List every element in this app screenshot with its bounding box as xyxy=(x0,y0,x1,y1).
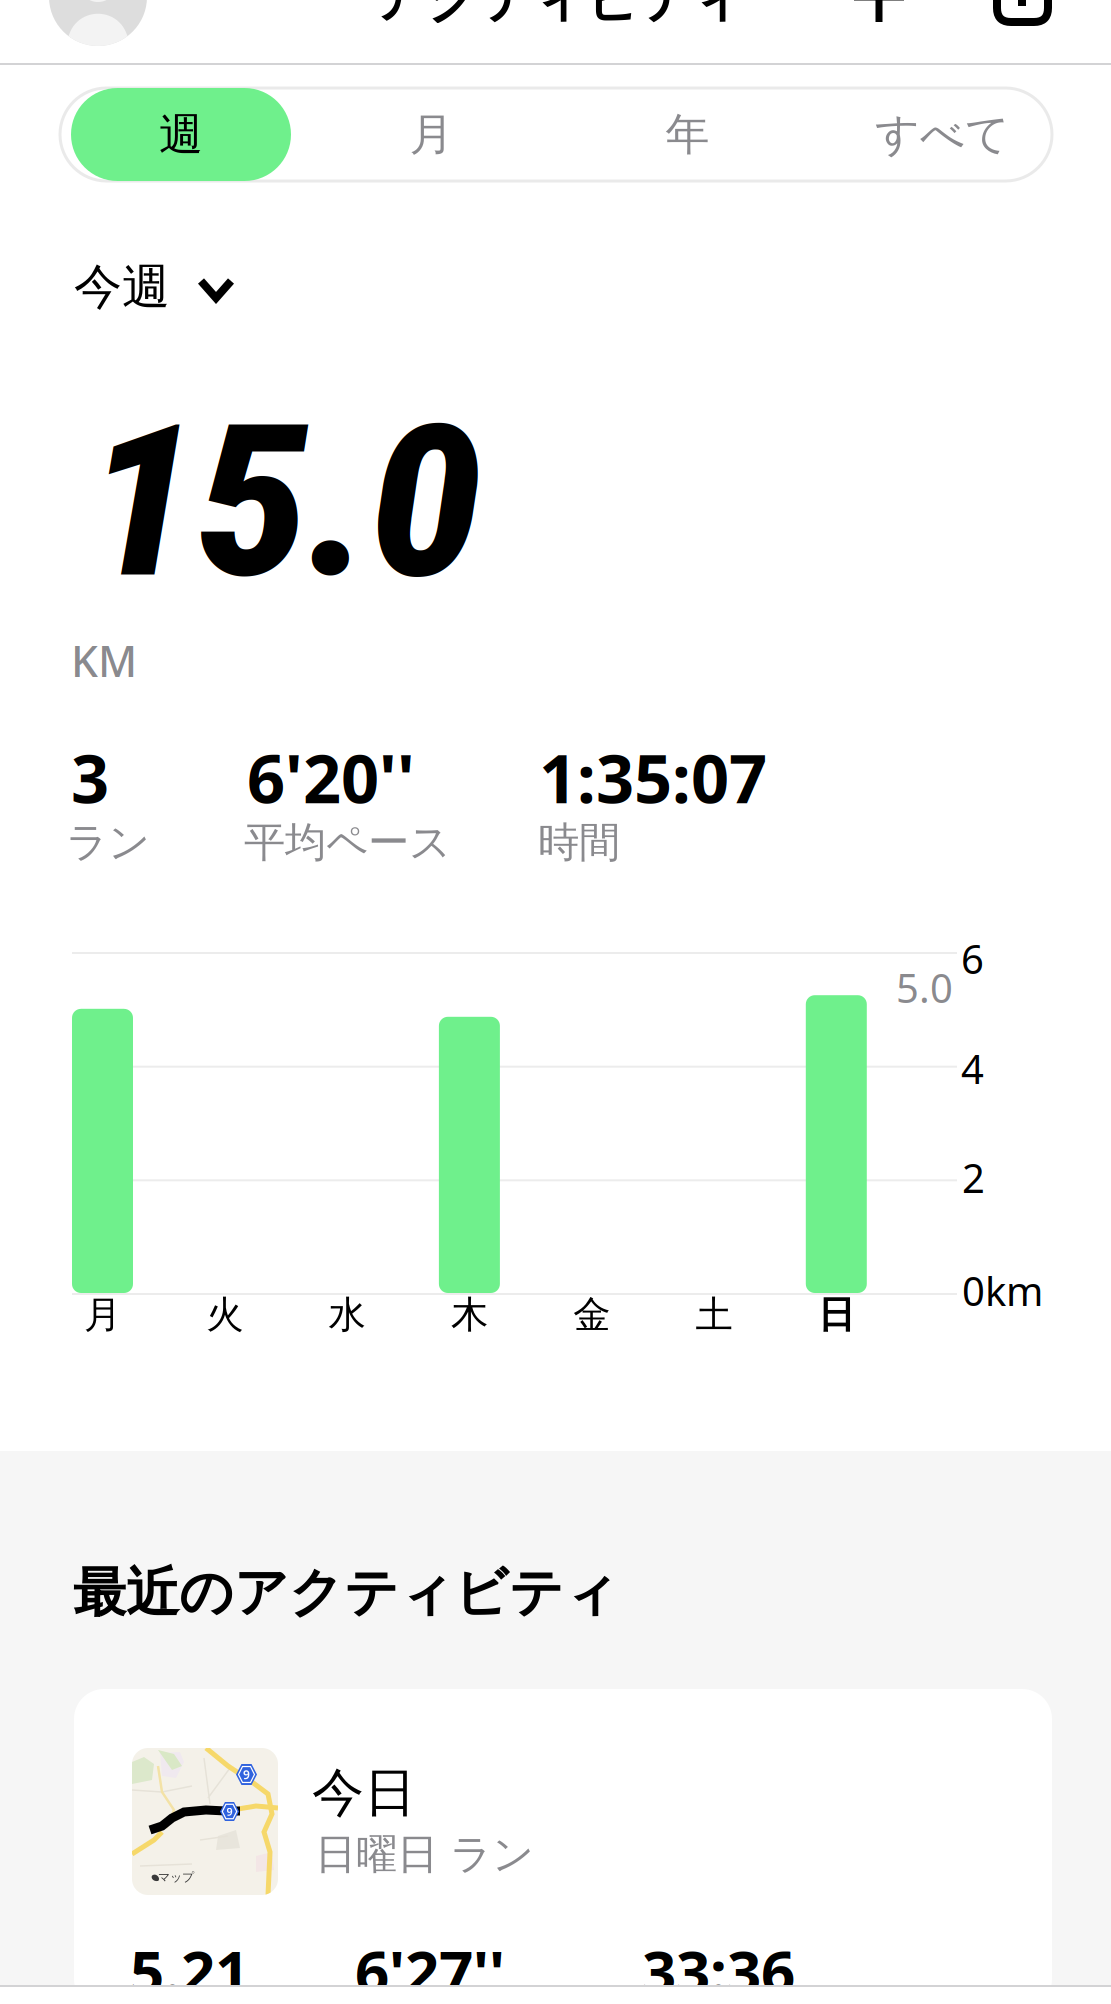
staticText: 1:35:07 xyxy=(539,733,767,821)
button[interactable]: 週 xyxy=(71,88,291,181)
staticText: 3 xyxy=(71,733,109,821)
staticText: 4 xyxy=(961,1042,984,1095)
staticText: 6 xyxy=(961,932,984,985)
staticText: 今日 xyxy=(312,1761,416,1825)
staticText: KM xyxy=(71,632,137,689)
staticText: 月 xyxy=(84,1292,121,1338)
staticText: 火 xyxy=(206,1292,243,1338)
staticText: 9 xyxy=(226,1804,232,1819)
staticText: 水 xyxy=(329,1292,366,1338)
staticText: 金 xyxy=(573,1292,610,1338)
button[interactable]: 月 xyxy=(306,88,557,181)
staticText: 木 xyxy=(451,1292,488,1338)
staticText: 年 xyxy=(665,107,709,161)
button[interactable]: 今週 xyxy=(0,0,159,70)
staticText: 週 xyxy=(159,107,203,161)
staticText: 5.0 xyxy=(896,961,953,1014)
staticText: 6'20'' xyxy=(247,733,415,821)
staticText: 今週 xyxy=(74,257,170,316)
button[interactable]: プロフィール xyxy=(0,0,98,98)
staticText: アクティビティ xyxy=(374,0,745,31)
staticText: 土 xyxy=(695,1292,732,1338)
staticText: 平均ペース xyxy=(244,817,451,868)
staticText: 月 xyxy=(409,107,453,161)
staticText: マップ xyxy=(158,1870,194,1885)
staticText: 2 xyxy=(962,1151,985,1204)
staticText: すべて xyxy=(875,107,1010,161)
staticText: 9 xyxy=(243,1766,250,1782)
staticText: 時間 xyxy=(538,817,620,868)
staticText: 日曜日 ラン xyxy=(315,1829,534,1880)
staticText: 15.0 xyxy=(86,379,481,626)
button[interactable]: 共有 xyxy=(0,0,59,62)
staticText: ラン xyxy=(66,817,150,868)
staticText: 日 xyxy=(818,1292,855,1338)
staticText: 0km xyxy=(962,1264,1043,1317)
staticText: 33:36 xyxy=(642,1931,795,2004)
button[interactable]: すべて xyxy=(817,88,1068,181)
button[interactable]: 追加 xyxy=(0,0,54,54)
staticText: 5.21 xyxy=(130,1931,249,2004)
staticText: 最近のアクティビティ xyxy=(73,1560,619,1625)
staticText: 6'27'' xyxy=(355,1931,505,2004)
button[interactable]: 年 xyxy=(562,88,813,181)
button[interactable]: 9 xyxy=(0,0,978,320)
